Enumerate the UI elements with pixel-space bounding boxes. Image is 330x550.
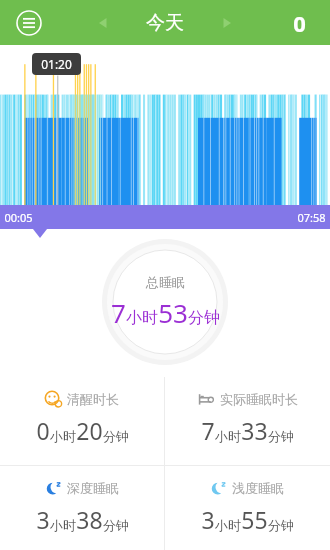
staticText: 实际睡眠时长: [220, 391, 298, 407]
staticText: 07:58: [297, 210, 326, 225]
staticText: 小时: [215, 517, 241, 533]
staticText: 38: [76, 504, 103, 535]
button[interactable]: 清醒时长: [0, 377, 164, 465]
staticText: 浅度睡眠: [232, 480, 284, 496]
staticText: 0: [36, 415, 50, 446]
staticText: 小时: [215, 428, 241, 444]
staticText: 深度睡眠: [67, 480, 119, 496]
staticText: 3: [201, 504, 215, 535]
button[interactable]: 浅度睡眠: [165, 466, 330, 550]
staticText: 0: [293, 8, 306, 38]
staticText: 总睡眠: [146, 274, 185, 290]
staticText: 小时: [50, 428, 76, 444]
staticText: 55: [241, 504, 268, 535]
staticText: 20: [76, 415, 103, 446]
staticText: 33: [241, 415, 268, 446]
staticText: 分钟: [268, 428, 294, 444]
button[interactable]: Previous day: [88, 8, 118, 38]
staticText: 今天: [146, 11, 184, 35]
staticText: 00:05: [4, 210, 33, 225]
button[interactable]: Next day: [212, 8, 242, 38]
button[interactable]: 深度睡眠: [0, 466, 164, 550]
staticText: 分钟: [103, 517, 129, 533]
staticText: 小时: [50, 517, 76, 533]
staticText: 3: [36, 504, 50, 535]
button[interactable]: Menu: [12, 6, 46, 40]
staticText: 清醒时长: [67, 391, 119, 407]
staticText: 7: [111, 295, 126, 330]
staticText: 分钟: [188, 308, 220, 328]
button[interactable]: 实际睡眠时长: [165, 377, 330, 465]
staticText: 小时: [126, 308, 158, 328]
button[interactable]: Share: [282, 6, 316, 40]
staticText: 01:20: [41, 56, 72, 72]
staticText: 分钟: [103, 428, 129, 444]
staticText: 分钟: [268, 517, 294, 533]
staticText: 7: [201, 415, 215, 446]
staticText: 53: [158, 295, 188, 330]
